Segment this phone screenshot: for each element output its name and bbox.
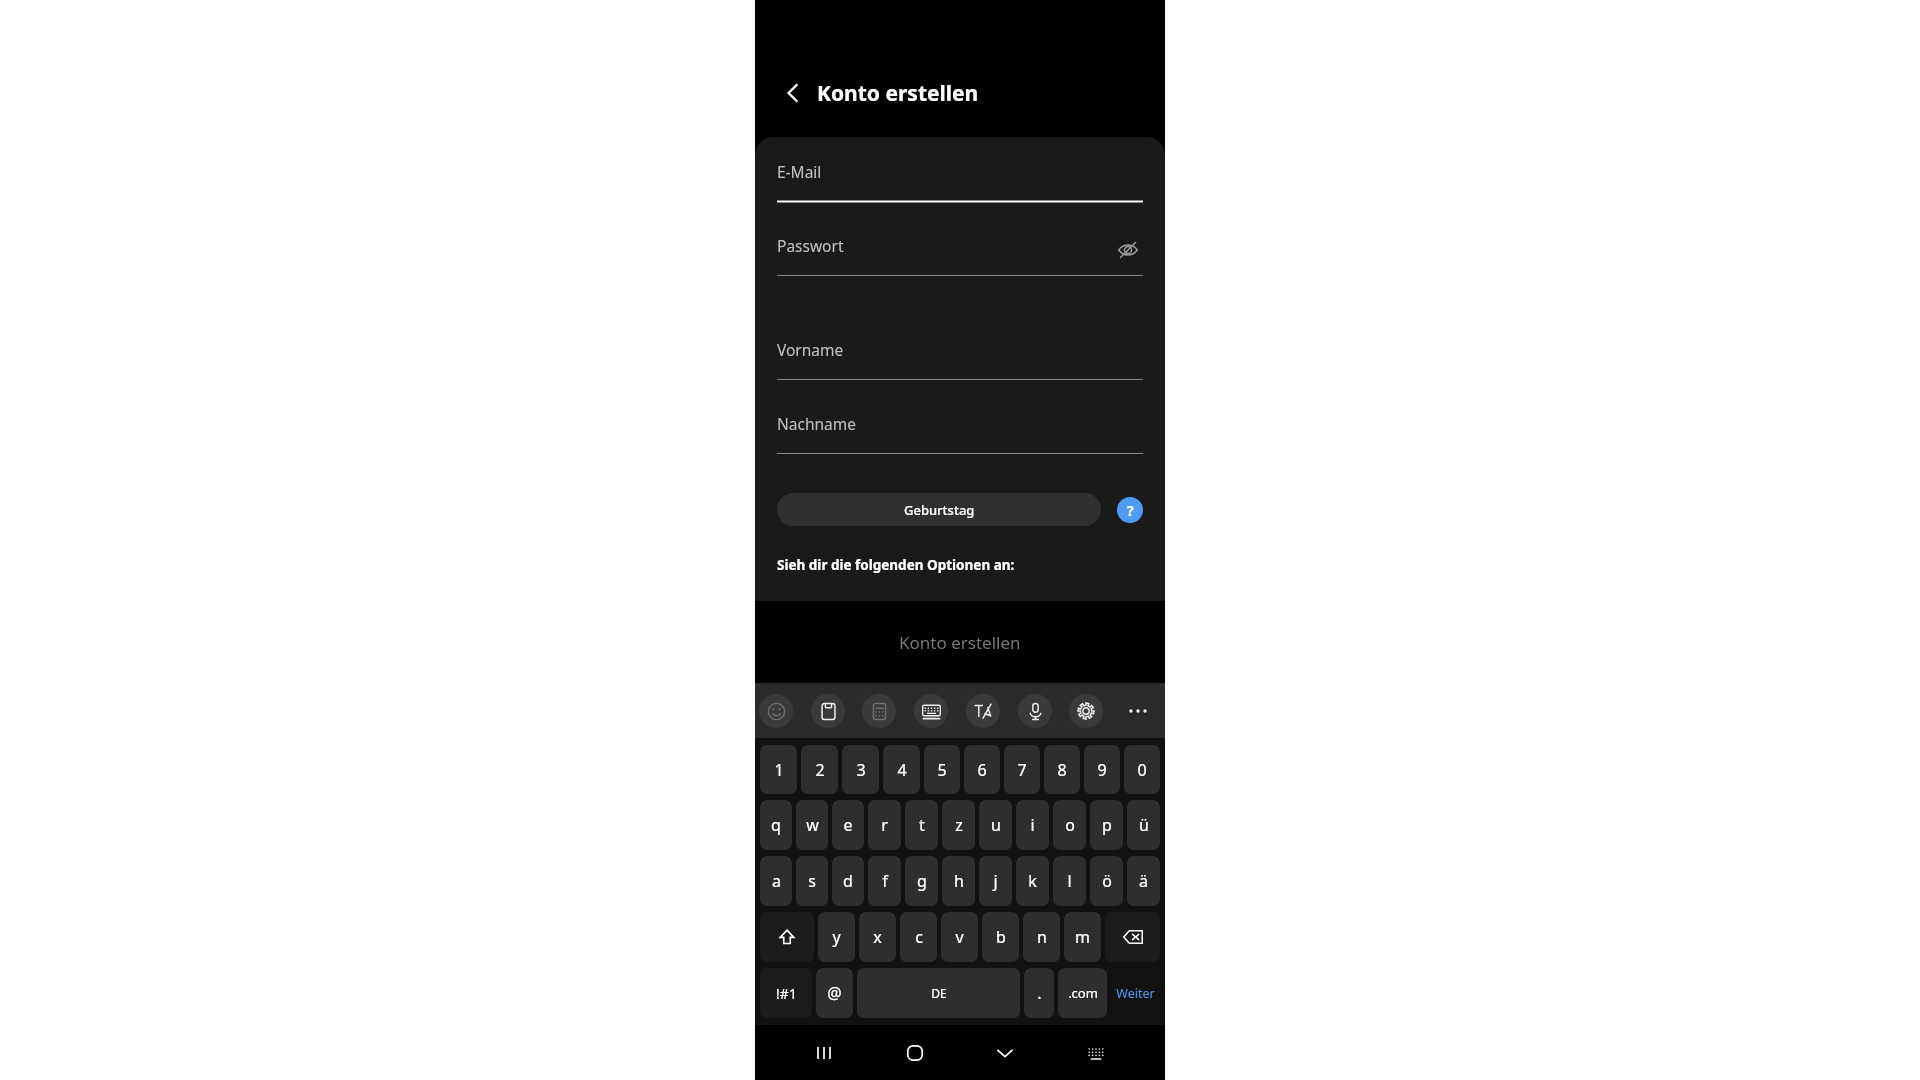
button[interactable]: DE <box>857 968 1020 1018</box>
button[interactable]: 5 <box>924 745 960 794</box>
button[interactable]: Recent apps <box>802 1031 846 1075</box>
button[interactable]: Geburtstag <box>777 493 1101 526</box>
button[interactable]: 7 <box>1004 745 1040 794</box>
button[interactable]: q <box>760 800 792 850</box>
button[interactable]: !#1 <box>760 968 812 1018</box>
staticText: 5 <box>937 759 947 781</box>
button[interactable]: Weiter <box>1111 968 1160 1018</box>
button[interactable]: j <box>979 856 1012 906</box>
button[interactable]: Help <box>1117 497 1143 523</box>
staticText: t <box>919 814 925 836</box>
staticText: Konto erstellen <box>817 79 979 108</box>
button[interactable]: Handwriting <box>966 694 1000 728</box>
button[interactable]: More options <box>1121 694 1155 728</box>
staticText: l <box>1067 870 1072 892</box>
button[interactable]: Back <box>775 75 811 111</box>
staticText: e <box>843 814 853 836</box>
staticText: ? <box>1127 501 1134 520</box>
button[interactable]: u <box>979 800 1012 850</box>
button[interactable]: Change keyboard <box>1074 1031 1118 1075</box>
staticText: s <box>808 870 816 892</box>
button[interactable]: t <box>905 800 938 850</box>
button[interactable]: o <box>1053 800 1086 850</box>
button[interactable]: g <box>905 856 938 906</box>
button[interactable]: 4 <box>883 745 920 794</box>
button[interactable]: c <box>900 912 937 962</box>
button[interactable]: l <box>1053 856 1086 906</box>
staticText: i <box>1030 814 1035 836</box>
button[interactable]: Vorname <box>777 339 1143 381</box>
button[interactable]: k <box>1016 856 1049 906</box>
button[interactable]: ä <box>1127 856 1160 906</box>
button[interactable]: Nachname <box>777 413 1143 455</box>
staticText: a <box>772 870 781 892</box>
button[interactable]: ö <box>1090 856 1123 906</box>
staticText: Geburtstag <box>904 501 975 519</box>
staticText: y <box>832 926 841 948</box>
staticText: z <box>955 814 963 836</box>
button[interactable]: Home <box>893 1031 937 1075</box>
staticText: DE <box>931 985 947 1001</box>
staticText: j <box>993 870 998 892</box>
staticText: r <box>881 814 888 836</box>
staticText: m <box>1075 926 1090 948</box>
staticText: Passwort <box>777 235 844 256</box>
button[interactable]: 6 <box>964 745 1000 794</box>
button[interactable]: 2 <box>801 745 838 794</box>
button[interactable]: Number pad <box>862 694 896 728</box>
staticText: 2 <box>815 759 825 781</box>
button[interactable]: n <box>1023 912 1060 962</box>
staticText: 6 <box>977 759 987 781</box>
button[interactable]: a <box>760 856 792 906</box>
button[interactable]: r <box>868 800 901 850</box>
button[interactable]: y <box>818 912 855 962</box>
staticText: q <box>771 814 781 836</box>
button[interactable]: s <box>796 856 828 906</box>
button[interactable]: Backspace <box>1105 912 1160 962</box>
button[interactable]: Hide keyboard <box>983 1031 1027 1075</box>
staticText: d <box>843 870 853 892</box>
button[interactable]: Voice input <box>1018 694 1052 728</box>
button[interactable]: E-Mail <box>777 161 1143 203</box>
staticText: Vorname <box>777 339 844 360</box>
button[interactable]: 8 <box>1044 745 1080 794</box>
button[interactable]: 0 <box>1124 745 1160 794</box>
button[interactable]: b <box>982 912 1019 962</box>
button[interactable]: z <box>942 800 975 850</box>
staticText: 1 <box>774 759 784 781</box>
button[interactable]: p <box>1090 800 1123 850</box>
button[interactable]: x <box>859 912 896 962</box>
button[interactable]: . <box>1024 968 1054 1018</box>
button[interactable]: Clipboard <box>811 694 845 728</box>
button[interactable]: Emoji <box>759 694 793 728</box>
button[interactable]: v <box>941 912 978 962</box>
staticText: @ <box>827 982 842 1004</box>
staticText: h <box>954 870 964 892</box>
button[interactable]: w <box>796 800 828 850</box>
staticText: c <box>915 926 923 948</box>
staticText: u <box>991 814 1001 836</box>
button[interactable]: m <box>1064 912 1101 962</box>
button[interactable]: 9 <box>1084 745 1120 794</box>
button[interactable]: Settings <box>1069 694 1103 728</box>
button[interactable]: ü <box>1127 800 1160 850</box>
staticText: o <box>1065 814 1075 836</box>
button[interactable]: 3 <box>842 745 879 794</box>
button[interactable]: Konto erstellen <box>755 601 1165 683</box>
button[interactable]: Shift <box>760 912 814 962</box>
button[interactable]: h <box>942 856 975 906</box>
button[interactable]: d <box>832 856 864 906</box>
button[interactable]: @ <box>816 968 853 1018</box>
button[interactable]: Show password <box>1113 235 1143 265</box>
button[interactable]: 1 <box>760 745 797 794</box>
button[interactable]: e <box>832 800 864 850</box>
button[interactable]: Keyboard layout <box>914 694 948 728</box>
button[interactable]: .com <box>1058 968 1107 1018</box>
staticText: . <box>1037 982 1042 1004</box>
staticText: 8 <box>1057 759 1067 781</box>
staticText: k <box>1028 870 1037 892</box>
staticText: 0 <box>1137 759 1147 781</box>
button[interactable]: Passwort <box>777 235 1143 277</box>
button[interactable]: f <box>868 856 901 906</box>
button[interactable]: i <box>1016 800 1049 850</box>
